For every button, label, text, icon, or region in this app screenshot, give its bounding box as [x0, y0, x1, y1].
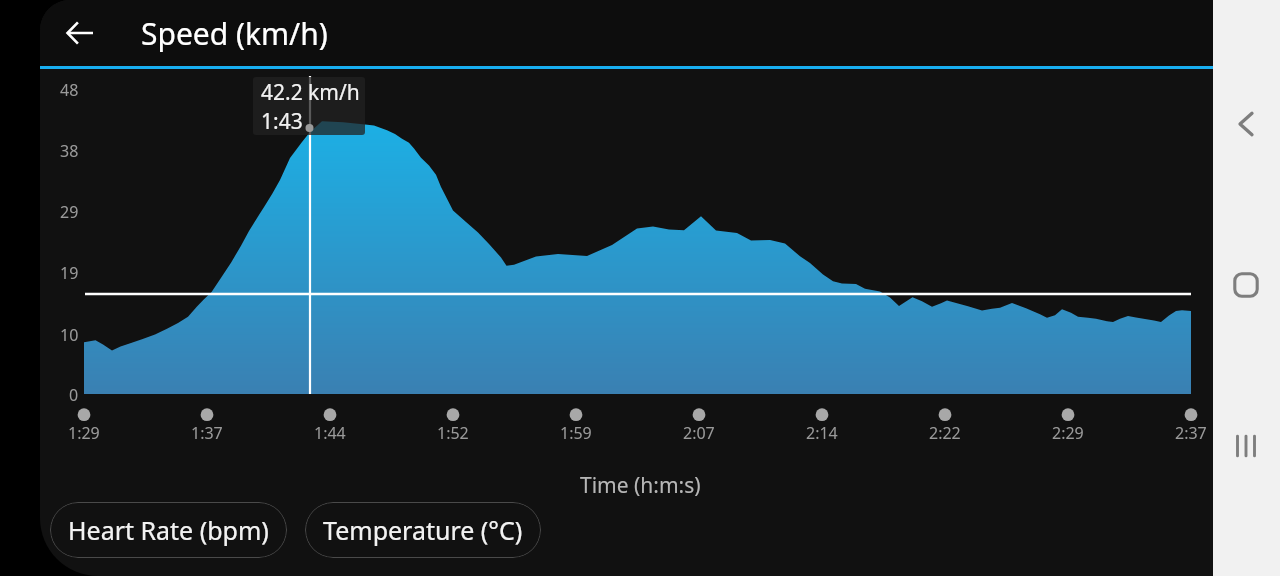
button[interactable]: Heart Rate (bpm): [50, 502, 287, 558]
staticText: 42.2 km/h: [261, 78, 360, 107]
staticText: Heart Rate (bpm): [68, 513, 269, 547]
staticText: 2:14: [806, 422, 838, 444]
button[interactable]: Temperature (°C): [305, 502, 541, 558]
button[interactable]: Back: [54, 7, 106, 59]
staticText: 10: [60, 324, 79, 346]
staticText: 1:44: [314, 422, 346, 444]
staticText: 1:43: [261, 107, 303, 135]
button[interactable]: Recent apps: [1217, 417, 1275, 475]
staticText: 2:07: [683, 422, 715, 444]
staticText: 19: [60, 262, 79, 284]
button[interactable]: Back: [1217, 95, 1275, 153]
staticText: 38: [60, 140, 79, 162]
staticText: 1:52: [437, 422, 469, 444]
staticText: Temperature (°C): [323, 513, 523, 547]
staticText: 2:37: [1175, 422, 1207, 444]
staticText: 48: [60, 79, 79, 101]
staticText: Time (h:m:s): [580, 471, 701, 499]
staticText: 2:29: [1052, 422, 1084, 444]
staticText: 0: [69, 384, 79, 406]
button[interactable]: Home: [1217, 256, 1275, 314]
staticText: 1:37: [191, 422, 223, 444]
staticText: 2:22: [929, 422, 961, 444]
staticText: 1:59: [560, 422, 592, 444]
staticText: 29: [60, 201, 79, 223]
staticText: 1:29: [68, 422, 100, 444]
staticText: Speed (km/h): [141, 13, 328, 54]
